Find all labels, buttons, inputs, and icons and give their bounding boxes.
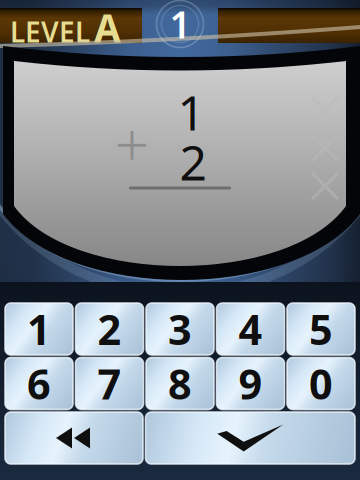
staticText: 3 — [168, 302, 192, 356]
staticText: 1 — [27, 302, 51, 356]
staticText: 1 — [177, 80, 204, 144]
staticText: 2 — [179, 130, 206, 194]
button[interactable]: Submit answer — [145, 412, 355, 464]
staticText: 4 — [238, 302, 262, 356]
staticText: 9 — [238, 356, 262, 411]
button[interactable]: 7 — [75, 357, 143, 409]
button[interactable]: 0 — [287, 357, 355, 409]
button[interactable]: 1 — [5, 303, 73, 355]
staticText: 7 — [97, 356, 121, 411]
staticText: 6 — [27, 356, 51, 411]
staticText: 1 — [169, 0, 190, 49]
button[interactable]: 8 — [146, 357, 214, 409]
staticText: + — [114, 102, 149, 184]
staticText: 0 — [309, 356, 333, 411]
staticText: A — [94, 2, 121, 53]
button[interactable]: 4 — [216, 303, 284, 355]
staticText: 2 — [97, 302, 121, 356]
button[interactable]: Backspace — [5, 412, 143, 464]
button[interactable]: LEVEL — [0, 8, 142, 43]
staticText: 5 — [309, 302, 333, 356]
button[interactable]: 5 — [287, 303, 355, 355]
staticText: 8 — [168, 356, 192, 411]
button[interactable]: 9 — [216, 357, 284, 409]
button[interactable]: 2 — [75, 303, 143, 355]
button[interactable]: 6 — [5, 357, 73, 409]
button[interactable]: 3 — [146, 303, 214, 355]
staticText: LEVEL — [10, 13, 90, 50]
